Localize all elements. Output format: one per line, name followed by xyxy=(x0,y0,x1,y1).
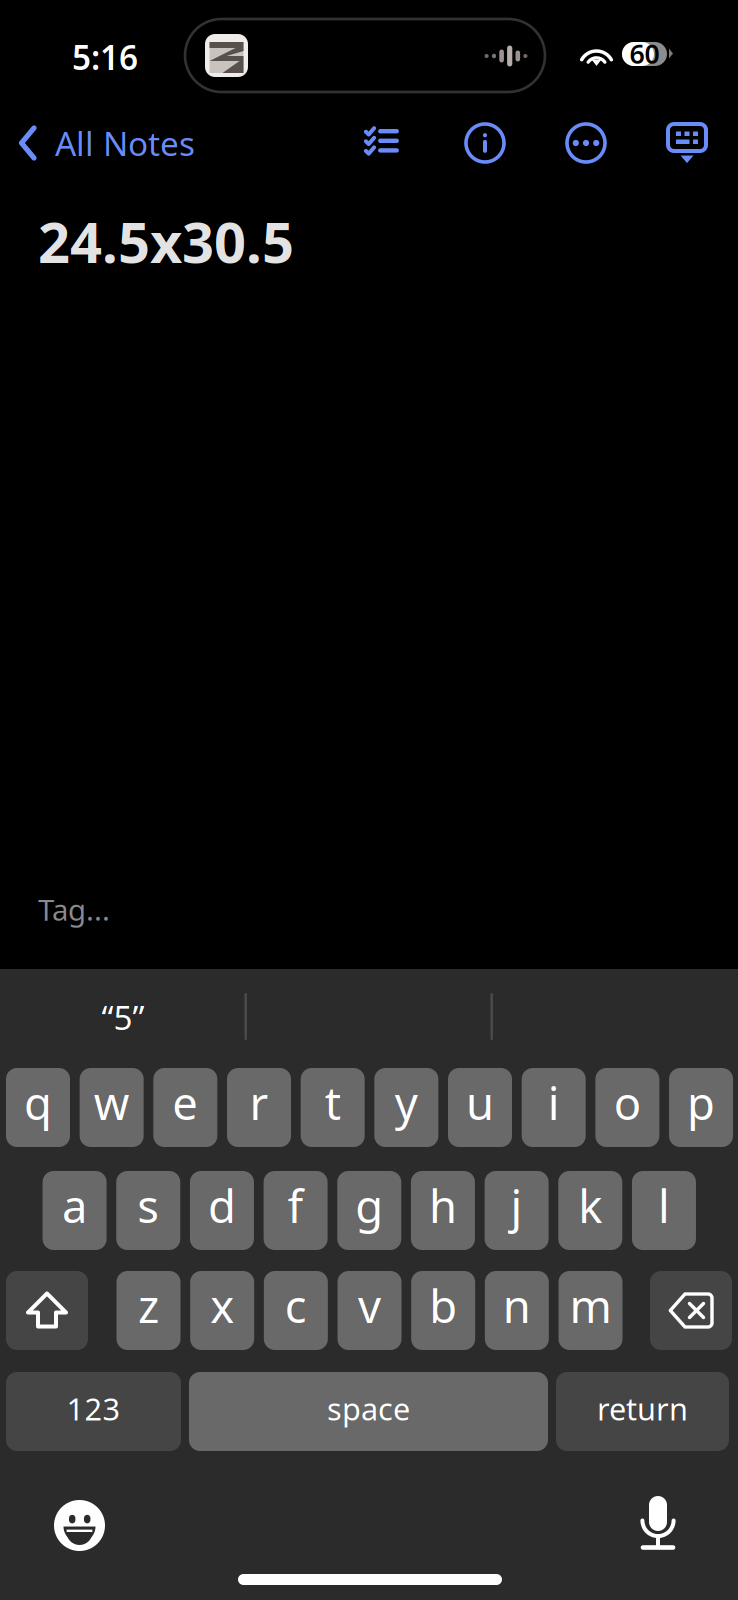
staticText: h xyxy=(429,1175,457,1236)
button[interactable]: Tag... xyxy=(0,870,738,969)
staticText: s xyxy=(137,1175,159,1236)
button[interactable]: g xyxy=(337,1171,401,1250)
button[interactable]: h xyxy=(411,1171,475,1250)
button[interactable]: e xyxy=(153,1068,217,1147)
button[interactable]: More Options xyxy=(556,113,616,173)
staticText: o xyxy=(614,1072,641,1133)
staticText: space xyxy=(327,1388,410,1429)
staticText: return xyxy=(597,1388,688,1429)
button[interactable]: y xyxy=(374,1068,438,1147)
staticText: i xyxy=(548,1072,560,1133)
staticText: g xyxy=(355,1175,383,1236)
button[interactable]: j xyxy=(485,1171,549,1250)
button[interactable]: z xyxy=(116,1271,180,1350)
staticText: f xyxy=(288,1175,304,1236)
staticText: k xyxy=(578,1175,602,1236)
staticText: 60 xyxy=(629,36,659,71)
staticText: r xyxy=(249,1072,268,1133)
staticText: d xyxy=(208,1175,236,1236)
button[interactable]: Dictation xyxy=(640,1496,676,1550)
button[interactable]: 24.5x30.5 xyxy=(0,190,738,870)
staticText: n xyxy=(503,1275,531,1336)
button[interactable]: x xyxy=(190,1271,254,1350)
staticText: v xyxy=(358,1275,381,1336)
staticText: w xyxy=(94,1072,130,1133)
button[interactable]: o xyxy=(595,1068,659,1147)
staticText: u xyxy=(466,1072,494,1133)
button[interactable]: w xyxy=(80,1068,144,1147)
staticText: b xyxy=(429,1275,457,1336)
button[interactable]: Emoji Keyboard xyxy=(54,1500,105,1551)
staticText: 24.5x30.5 xyxy=(38,204,294,278)
button[interactable]: l xyxy=(632,1171,696,1250)
button[interactable]: i xyxy=(522,1068,586,1147)
button[interactable]: Hide Keyboard xyxy=(657,115,717,175)
button[interactable]: d xyxy=(190,1171,254,1250)
button[interactable]: Delete xyxy=(650,1271,732,1350)
button[interactable]: b xyxy=(411,1271,475,1350)
staticText: “5” xyxy=(101,995,144,1039)
button[interactable]: All Notes xyxy=(0,112,209,174)
staticText: x xyxy=(210,1275,234,1336)
staticText: z xyxy=(138,1275,159,1336)
staticText: 123 xyxy=(66,1388,120,1429)
staticText: e xyxy=(172,1072,198,1133)
staticText: Tag... xyxy=(38,890,110,929)
staticText: All Notes xyxy=(55,121,195,165)
button[interactable]: u xyxy=(448,1068,512,1147)
staticText: m xyxy=(569,1275,611,1336)
button[interactable]: space xyxy=(189,1372,548,1451)
button[interactable]: return xyxy=(556,1372,729,1451)
button[interactable]: c xyxy=(264,1271,328,1350)
staticText: c xyxy=(285,1275,307,1336)
button[interactable]: a xyxy=(43,1171,107,1250)
staticText: j xyxy=(511,1175,523,1236)
button[interactable]: m xyxy=(558,1271,622,1350)
button[interactable]: Checklist xyxy=(351,109,411,169)
button[interactable]: Shift xyxy=(6,1271,88,1350)
staticText: p xyxy=(687,1072,715,1133)
button[interactable]: k xyxy=(558,1171,622,1250)
staticText: l xyxy=(658,1175,670,1236)
button[interactable]: Info xyxy=(455,113,515,173)
button[interactable]: r xyxy=(227,1068,291,1147)
staticText: 5:16 xyxy=(72,35,138,79)
button[interactable]: q xyxy=(6,1068,70,1147)
button[interactable]: n xyxy=(485,1271,549,1350)
button[interactable]: s xyxy=(116,1171,180,1250)
staticText: t xyxy=(325,1072,341,1133)
button[interactable]: p xyxy=(669,1068,733,1147)
staticText: a xyxy=(62,1175,87,1236)
button[interactable]: f xyxy=(264,1171,328,1250)
button[interactable]: 123 xyxy=(6,1372,181,1451)
staticText: y xyxy=(395,1072,418,1133)
button[interactable]: t xyxy=(301,1068,365,1147)
button[interactable]: v xyxy=(337,1271,401,1350)
staticText: q xyxy=(24,1072,52,1133)
